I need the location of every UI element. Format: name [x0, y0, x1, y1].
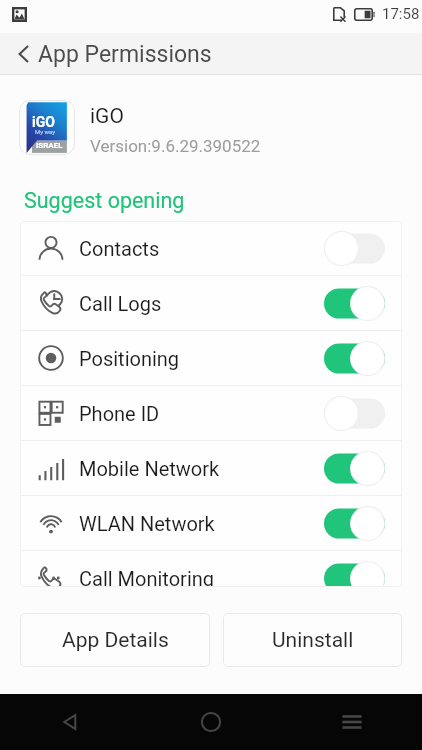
staticText: Positioning — [79, 347, 180, 370]
staticText: 17:58 — [382, 5, 420, 23]
staticText: Uninstall — [272, 628, 354, 653]
button[interactable]: App Details — [20, 613, 210, 667]
button[interactable]: WLAN Network — [20, 496, 402, 550]
staticText: Call Logs — [79, 292, 162, 315]
staticText: My way — [35, 128, 56, 135]
staticText: Contacts — [79, 237, 160, 260]
button[interactable]: Home — [140, 694, 281, 750]
button[interactable]: Mobile Network — [20, 441, 402, 495]
staticText: Suggest opening — [24, 188, 185, 213]
staticText: Mobile Network — [79, 457, 220, 480]
button[interactable]: Permission off — [324, 396, 385, 431]
button[interactable]: Permission on — [324, 561, 385, 587]
staticText: iGO — [90, 104, 124, 129]
button[interactable]: Recent apps — [281, 694, 422, 750]
button[interactable]: Permission on — [324, 506, 385, 541]
button[interactable]: Permission on — [324, 286, 385, 321]
button[interactable]: Back — [0, 694, 140, 750]
staticText: App Details — [62, 628, 169, 653]
button[interactable]: Phone ID — [20, 386, 402, 440]
button[interactable]: Back — [4, 34, 44, 74]
staticText: Phone ID — [79, 402, 160, 425]
staticText: WLAN Network — [79, 512, 215, 535]
button[interactable]: Permission on — [324, 341, 385, 376]
staticText: Call Monitoring — [79, 567, 215, 587]
staticText: App Permissions — [38, 41, 212, 68]
staticText: iGO — [32, 114, 55, 130]
button[interactable]: Call Monitoring — [20, 551, 402, 587]
staticText: ISRAEL — [36, 141, 63, 150]
button[interactable]: Call Logs — [20, 276, 402, 330]
button[interactable]: Positioning — [20, 331, 402, 385]
button[interactable]: Permission off — [324, 231, 385, 266]
button[interactable]: Permission on — [324, 451, 385, 486]
button[interactable]: Contacts — [20, 221, 402, 275]
staticText: Version:9.6.29.390522 — [90, 136, 261, 156]
button[interactable]: Uninstall — [223, 613, 402, 667]
